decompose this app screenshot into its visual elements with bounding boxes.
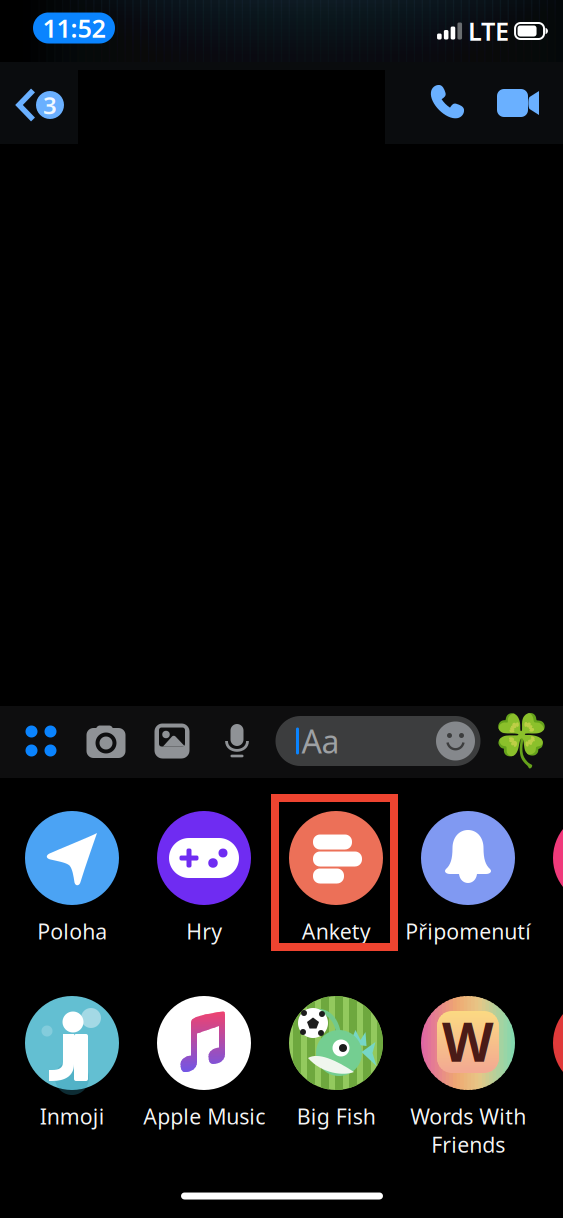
button[interactable]: Připomenutí [402,811,534,983]
button[interactable]: Open apps [14,711,68,771]
staticText: 🍀 [489,712,552,770]
button[interactable]: Back, 3 conversations [0,62,74,144]
staticText: Big Fish [296,1102,375,1130]
staticText: Připomenutí [405,917,531,945]
staticText: Inmoji [39,1102,104,1130]
button[interactable]: Apple Music [138,996,270,1168]
staticText: W [442,1006,494,1076]
button[interactable]: Audio call [416,62,478,144]
staticText: Aa [301,720,339,762]
button[interactable]: W [402,996,534,1168]
button[interactable]: Ankety [270,811,402,983]
staticText: Poloha [37,917,107,945]
button[interactable]: Big Fish [270,996,402,1168]
button[interactable]: Record voice message [208,711,266,771]
staticText: Apple Music [143,1102,265,1130]
button[interactable]: Photo library [143,711,201,771]
staticText: Ankety [301,917,370,945]
button[interactable]: Video call [488,62,550,144]
staticText: 11:52 [42,11,105,45]
button[interactable]: Poloha [6,811,138,983]
staticText: 3 [43,89,57,121]
button[interactable]: Hry [138,811,270,983]
button[interactable]: Camera [77,711,135,771]
button[interactable]: Message [275,716,480,766]
staticText: Hry [186,917,222,945]
staticText: LTE [468,14,509,48]
staticText: Words With Friends [410,1102,526,1159]
button[interactable]: Inmoji [6,996,138,1168]
button[interactable]: Send sticker [495,711,547,771]
